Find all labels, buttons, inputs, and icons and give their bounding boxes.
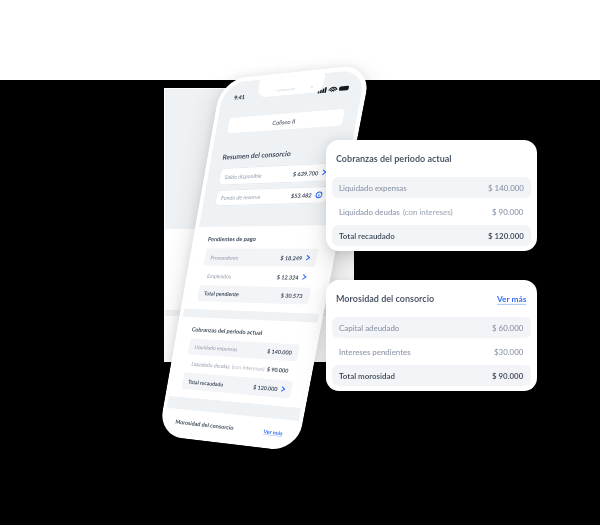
button[interactable]: Liquidado expensas — [187, 338, 300, 362]
staticText: Liquidado expensas — [339, 183, 407, 192]
staticText: Total morosidad — [339, 371, 395, 380]
staticText: (con intereses) — [403, 207, 453, 216]
staticText: $ 90.000 — [492, 207, 524, 216]
button[interactable]: Total recaudado — [181, 372, 293, 399]
other: Ver detalle — [321, 168, 327, 176]
button[interactable]: Empleados — [200, 267, 315, 286]
button[interactable]: Morosidad del consorcio — [326, 280, 537, 391]
staticText: Cobranzas del periodo actual — [191, 325, 263, 336]
staticText: $ 90.000 — [266, 366, 289, 374]
staticText: $ 140.000 — [267, 348, 293, 356]
staticText: $ 60.000 — [492, 323, 524, 332]
staticText: $ 30.573 — [280, 292, 304, 299]
staticText: Cobranzas del periodo actual — [336, 153, 452, 164]
staticText: Total recaudado — [339, 231, 395, 240]
button[interactable]: Proveedores — [203, 248, 319, 267]
staticText: Total pendiente — [204, 290, 240, 297]
button[interactable]: Total morosidad — [332, 365, 531, 386]
staticText: $ 140.000 — [488, 183, 524, 192]
staticText: Ver más — [497, 294, 527, 304]
staticText: Liquidado deudas — [339, 207, 400, 216]
staticText: $ 12.324 — [276, 274, 300, 281]
button[interactable]: Liquidado deudas — [184, 355, 297, 380]
other: Ver detalle — [302, 273, 307, 281]
staticText: $ 90.000 — [492, 371, 524, 380]
other: Información — [315, 191, 323, 198]
other: Ver detalle — [305, 254, 311, 261]
staticText: Pendientes de pago — [207, 235, 257, 242]
staticText: Coliseo II — [272, 118, 296, 126]
staticText: $ 120.000 — [488, 231, 524, 240]
staticText: (con intereses) — [231, 363, 266, 372]
button[interactable]: Saldo disponible — [218, 162, 335, 186]
staticText: Morosidad del consorcio — [336, 293, 435, 304]
staticText: Intereses pendientes — [339, 347, 411, 356]
button[interactable]: Cobranzas del periodo actual — [326, 140, 537, 251]
staticText: $ 18.249 — [280, 255, 303, 261]
staticText: Capital adeudado — [339, 323, 400, 332]
button[interactable]: Capital adeudado — [332, 317, 531, 338]
staticText: $ 120.000 — [253, 384, 279, 392]
staticText: Morosidad del consorcio — [175, 418, 234, 431]
button[interactable]: Liquidado expensas — [332, 177, 531, 198]
staticText: Empleados — [207, 273, 232, 279]
staticText: $30.000 — [494, 347, 524, 356]
staticText: Fondo de reserva — [221, 193, 261, 201]
staticText: Total recaudado — [188, 379, 224, 388]
button[interactable]: Total recaudado — [332, 225, 531, 246]
staticText: Resumen del consorcio — [222, 148, 292, 161]
staticText: Saldo disponible — [224, 172, 263, 180]
button[interactable]: Fondo de reserva — [214, 186, 331, 206]
staticText: Proveedores — [210, 254, 239, 261]
staticText: Liquidado expensas — [194, 344, 239, 352]
staticText: 9:41 — [234, 94, 246, 101]
staticText: Liquidado deudas — [191, 361, 230, 369]
button[interactable]: Liquidado deudas — [332, 201, 531, 222]
staticText: $ 639.700 — [292, 170, 319, 177]
staticText: Ver más — [263, 428, 284, 436]
button[interactable]: Coliseo II — [227, 109, 345, 134]
staticText: $53.482 — [290, 192, 313, 199]
button[interactable]: Intereses pendientes — [332, 341, 531, 362]
button[interactable]: Total pendiente — [197, 285, 311, 305]
other: Ver detalle — [280, 385, 286, 393]
